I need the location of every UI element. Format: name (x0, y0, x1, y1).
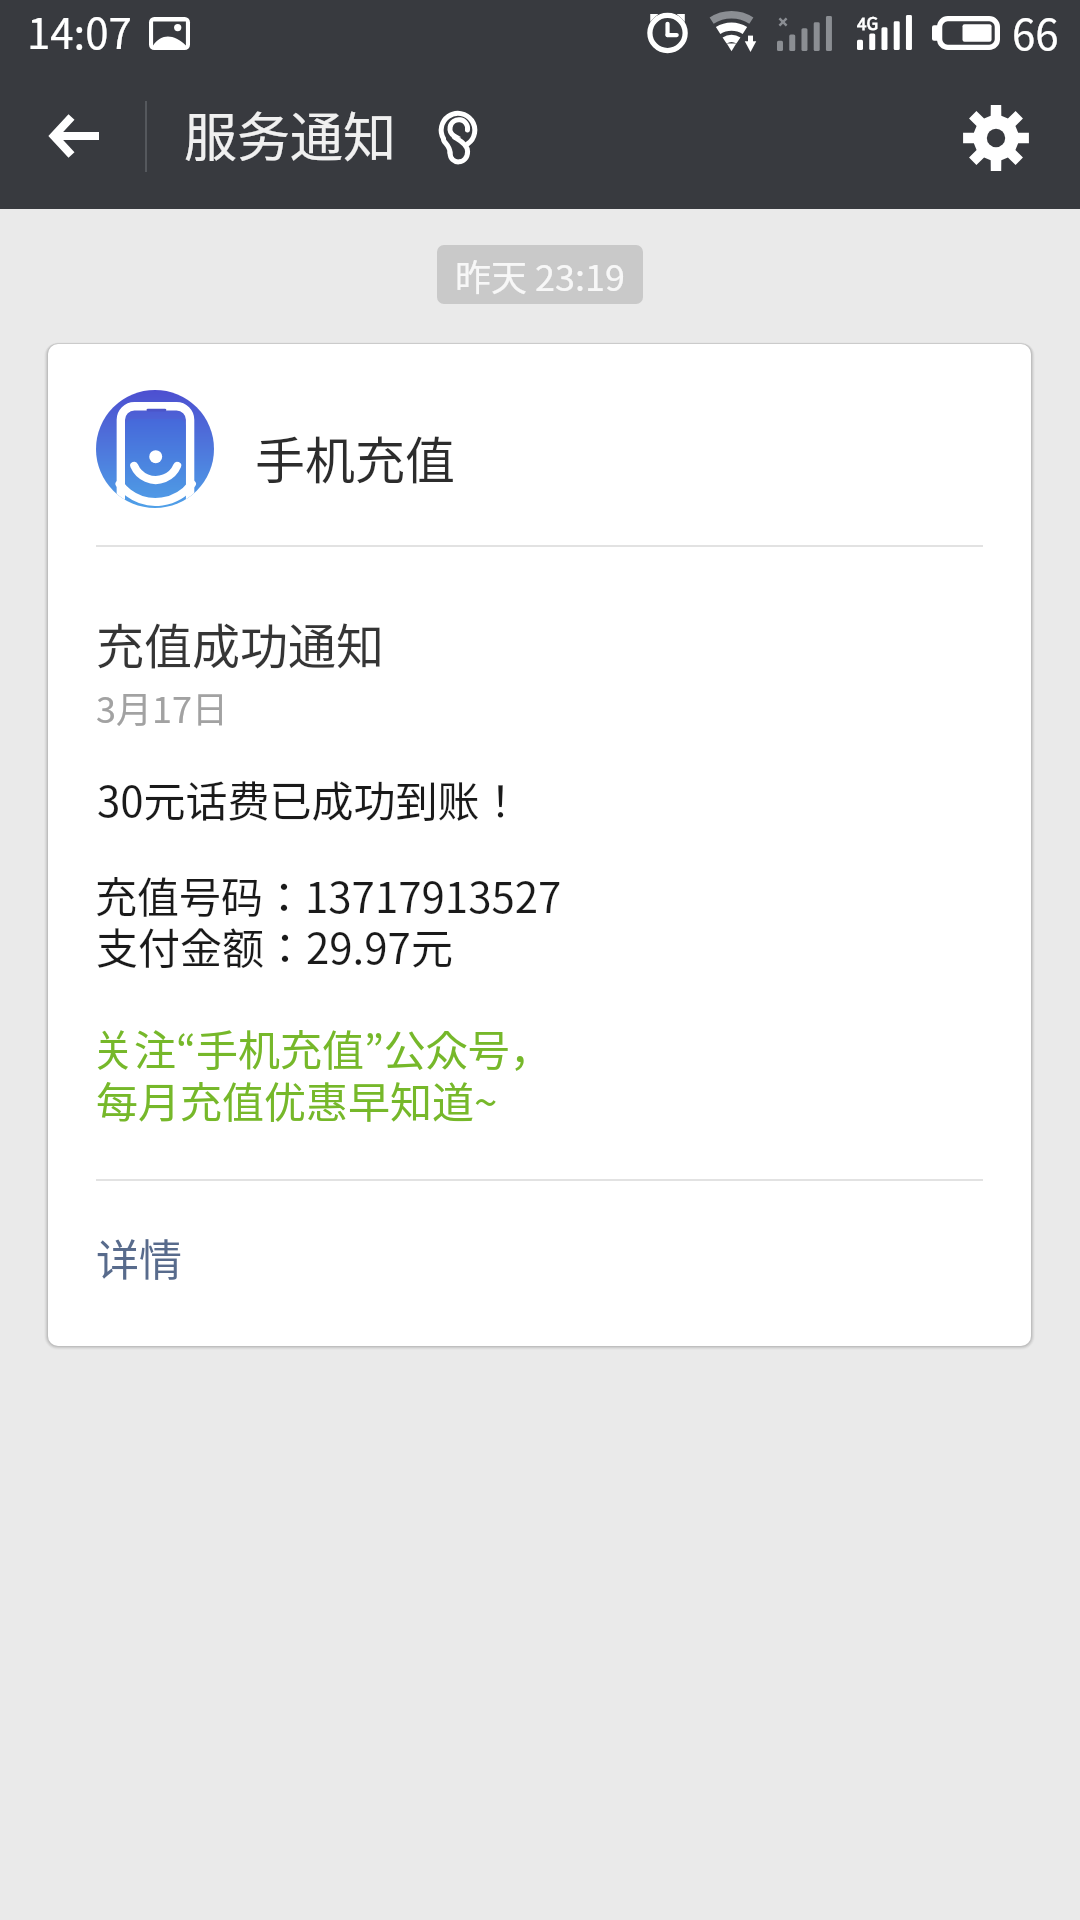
staticText: 66 (1012, 1, 1059, 62)
staticText: 昨天 23:19 (455, 249, 625, 301)
staticText: 服务通知 (184, 96, 396, 173)
staticText: 手机充值 (255, 421, 455, 493)
staticText: 3月17日 (96, 681, 228, 733)
staticText: 30元话费已成功到账！ (97, 768, 522, 829)
button[interactable]: 手机充值 (48, 344, 1031, 1346)
staticText: 充值号码：13717913527 (95, 864, 562, 925)
staticText: 充值成功通知 (96, 608, 385, 678)
button[interactable]: Back (0, 78, 145, 209)
staticText: 关注“手机充值”公众号， (92, 1017, 552, 1078)
staticText: 4G (857, 10, 879, 35)
button[interactable]: 详情 (48, 1204, 1031, 1346)
button[interactable]: Settings (928, 78, 1068, 209)
staticText: 14:07 (27, 0, 132, 61)
staticText: 支付金额：29.97元 (96, 915, 453, 976)
staticText: 每月充值优惠早知道~ (96, 1069, 498, 1130)
staticText: 详情 (96, 1226, 182, 1288)
